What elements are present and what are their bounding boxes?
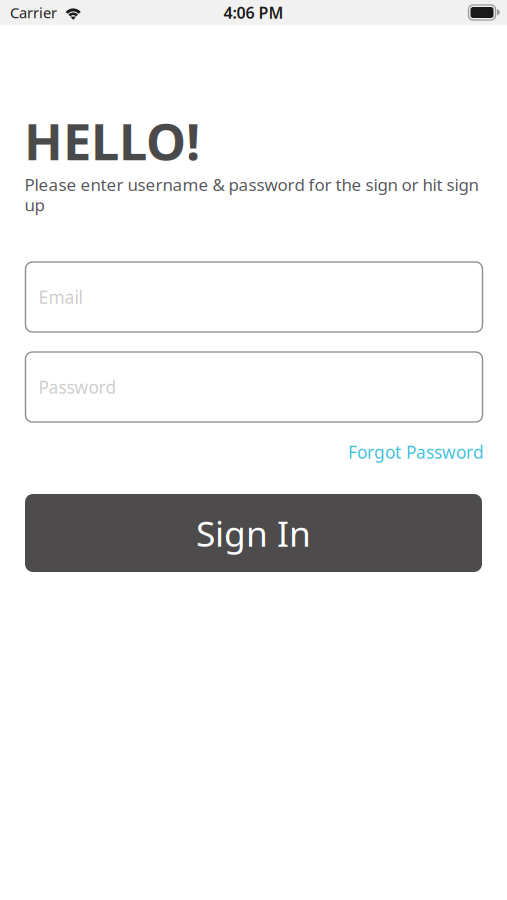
button[interactable]: Sign In <box>25 494 482 572</box>
staticText: Please enter username & password for the… <box>24 173 478 196</box>
staticText: Sign In <box>196 509 311 557</box>
staticText: Email <box>38 285 82 309</box>
button[interactable]: Email <box>25 262 482 332</box>
staticText: HELLO! <box>24 106 200 175</box>
staticText: Forgot Password <box>348 440 484 464</box>
button[interactable]: Forgot Password <box>344 439 484 465</box>
staticText: Password <box>38 375 116 399</box>
button[interactable]: Password <box>25 352 482 422</box>
staticText: 4:06 PM <box>223 2 283 23</box>
staticText: up <box>24 193 44 216</box>
staticText: Carrier <box>10 2 57 22</box>
